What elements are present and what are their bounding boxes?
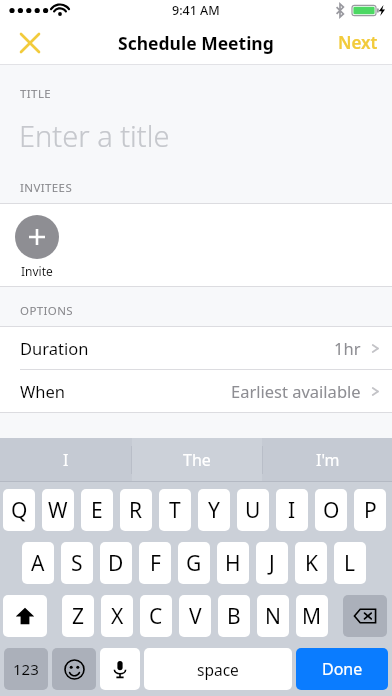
button[interactable]: Shift [3,595,47,637]
staticText: Z [72,602,85,631]
staticText: TITLE [20,86,52,102]
button[interactable]: N [257,595,289,637]
staticText: Enter a title [19,116,170,155]
staticText: I'm [316,449,340,471]
button[interactable]: K [295,542,327,584]
staticText: S [71,549,83,578]
button[interactable]: R [120,489,152,531]
staticText: Duration [20,337,89,359]
button[interactable]: Invite [15,215,59,279]
staticText: Done [322,658,363,680]
button[interactable]: Close [10,23,50,63]
staticText: Earliest available [231,380,361,402]
button[interactable]: I [0,438,131,482]
button[interactable]: D [100,542,132,584]
button[interactable]: O [315,489,347,531]
button[interactable]: V [179,595,211,637]
staticText: L [344,549,356,578]
staticText: H [225,549,241,578]
button[interactable]: Backspace [343,595,387,637]
staticText: E [91,496,103,525]
button[interactable]: W [42,489,74,531]
staticText: T [169,496,181,525]
staticText: I [288,496,296,525]
staticText: P [364,496,377,525]
button[interactable]: Dictate [100,648,140,690]
staticText: B [227,602,241,631]
button[interactable]: H [217,542,249,584]
button[interactable]: F [139,542,171,584]
button[interactable]: When [0,370,392,412]
staticText: space [197,659,239,680]
button[interactable]: G [178,542,210,584]
button[interactable]: Next [324,23,392,62]
staticText: Y [208,496,220,525]
staticText: W [48,496,68,525]
button[interactable]: Z [62,595,94,637]
button[interactable]: C [140,595,172,637]
button[interactable]: B [218,595,250,637]
staticText: OPTIONS [20,303,74,319]
button[interactable]: A [22,542,54,584]
staticText: 1hr [334,337,361,359]
button[interactable]: U [237,489,269,531]
staticText: The [183,449,211,471]
button[interactable]: J [256,542,288,584]
button[interactable]: Y [198,489,230,531]
staticText: Q [11,496,28,525]
staticText: INVITEES [20,180,73,196]
button[interactable]: S [61,542,93,584]
button[interactable]: I [276,489,308,531]
staticText: X [111,602,124,631]
staticText: K [305,549,318,578]
button[interactable]: space [144,648,292,690]
button[interactable]: P [354,489,386,531]
staticText: 123 [13,659,39,679]
staticText: Invite [21,263,53,279]
staticText: I [63,449,69,471]
staticText: N [265,602,281,631]
button[interactable]: Q [3,489,35,531]
staticText: F [150,549,161,578]
staticText: A [31,549,45,578]
button[interactable]: The [132,438,262,482]
button[interactable]: T [159,489,191,531]
button[interactable]: M [296,595,328,637]
staticText: D [108,549,124,578]
staticText: G [186,549,202,578]
staticText: When [20,380,66,402]
button[interactable]: Emoji [52,648,96,690]
staticText: R [129,496,143,525]
button[interactable]: Duration [0,327,392,369]
staticText: C [149,602,163,631]
button[interactable]: L [334,542,366,584]
staticText: J [269,549,275,578]
staticText: Next [338,31,378,54]
button[interactable]: E [81,489,113,531]
button[interactable]: 123 [4,648,48,690]
staticText: U [245,496,261,525]
staticText: O [323,496,340,525]
staticText: Schedule Meeting [118,31,274,55]
button[interactable]: I'm [263,438,392,482]
staticText: V [189,602,202,631]
button[interactable]: Done [296,648,388,690]
button[interactable]: X [101,595,133,637]
staticText: 9:41 AM [172,2,220,19]
staticText: M [302,602,322,631]
